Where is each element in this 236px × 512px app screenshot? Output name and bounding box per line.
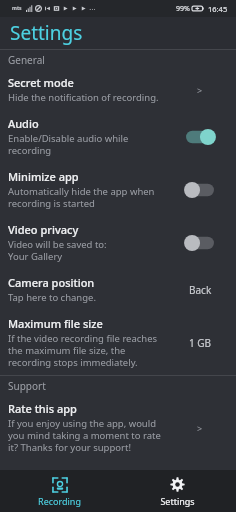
staticText: 1 GB bbox=[189, 336, 212, 350]
staticText: Back bbox=[189, 283, 212, 297]
button[interactable]: Minimize app bbox=[0, 163, 236, 216]
other: Settings bbox=[170, 477, 185, 492]
button[interactable]: Secret mode bbox=[0, 69, 236, 110]
staticText: ⋯ bbox=[89, 5, 95, 12]
staticText: Tap here to change. bbox=[8, 291, 96, 304]
staticText: Camera position bbox=[8, 275, 95, 290]
button[interactable]: Settings bbox=[118, 470, 236, 512]
staticText: Hide the notification of recording. bbox=[8, 91, 159, 104]
button[interactable]: Rate this app bbox=[0, 395, 236, 460]
staticText: Support bbox=[8, 379, 46, 393]
button[interactable]: Audio bbox=[0, 110, 236, 163]
staticText: Recording bbox=[38, 495, 81, 507]
staticText: mts bbox=[12, 5, 22, 12]
button[interactable]: Toggle on bbox=[183, 129, 217, 145]
staticText: Rate this app bbox=[8, 401, 77, 416]
button[interactable]: Toggle off bbox=[183, 235, 217, 251]
staticText: 16:45 bbox=[208, 4, 228, 14]
staticText: Video privacy bbox=[8, 222, 79, 237]
staticText: Settings bbox=[160, 495, 195, 507]
staticText: 99% bbox=[176, 4, 190, 14]
staticText: > bbox=[197, 84, 203, 96]
staticText: If the video recording file reaches the … bbox=[8, 332, 158, 369]
staticText: Settings bbox=[10, 20, 83, 46]
button[interactable]: Maximum file size bbox=[0, 310, 236, 375]
button[interactable]: Video privacy bbox=[0, 216, 236, 269]
staticText: Enable/Disable audio while recording bbox=[8, 132, 129, 157]
button[interactable]: Toggle off bbox=[183, 182, 217, 198]
staticText: > bbox=[197, 422, 203, 434]
staticText: General bbox=[8, 53, 45, 67]
staticText: Automatically hide the app when recordin… bbox=[8, 185, 155, 210]
staticText: If you enjoy using the app, would you mi… bbox=[8, 417, 161, 454]
button[interactable]: Recording bbox=[0, 470, 118, 512]
staticText: Video will be saved to: Your Gallery bbox=[8, 238, 107, 263]
staticText: Minimize app bbox=[8, 169, 79, 184]
staticText: Audio bbox=[8, 116, 39, 131]
button[interactable]: Camera position bbox=[0, 269, 236, 310]
other: Recording bbox=[52, 477, 68, 493]
staticText: Maximum file size bbox=[8, 316, 103, 331]
staticText: Secret mode bbox=[8, 75, 74, 90]
